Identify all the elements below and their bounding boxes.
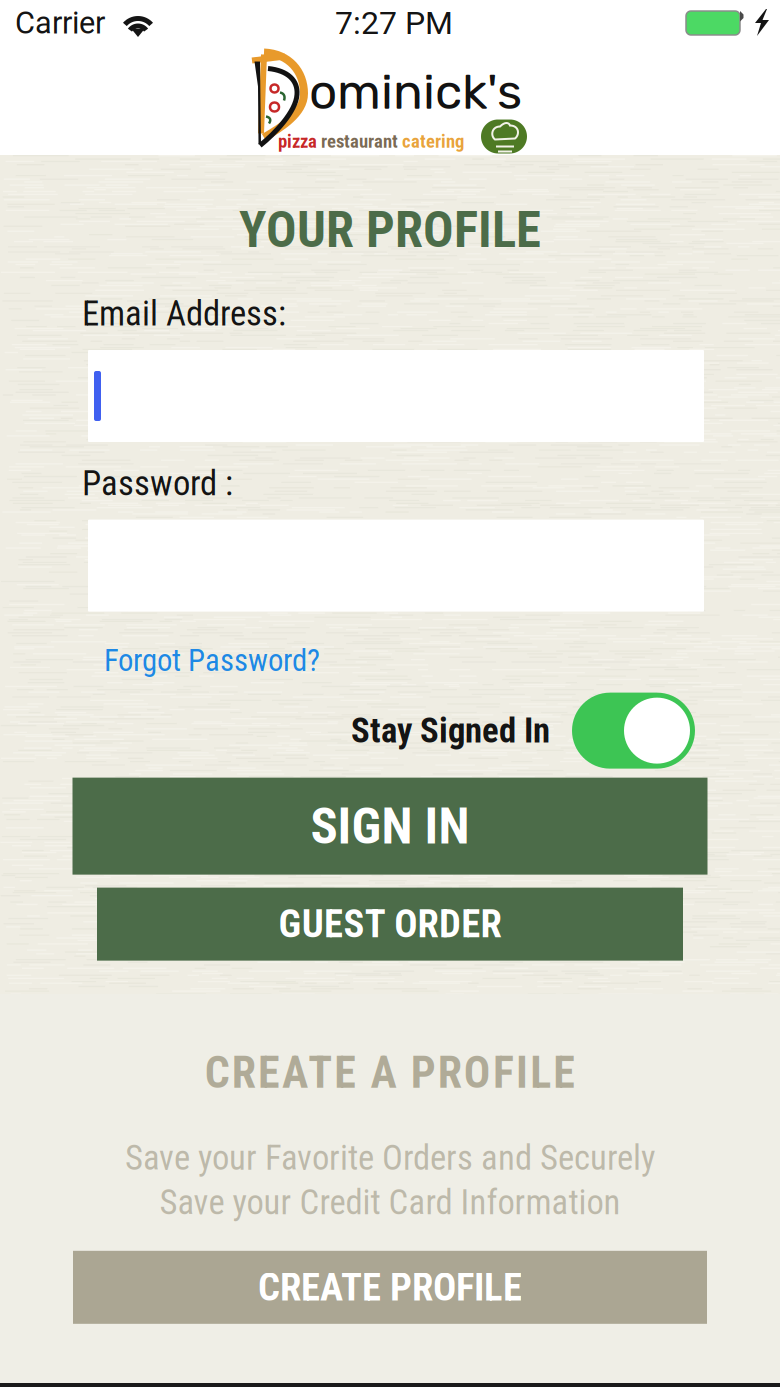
button[interactable]: GUEST ORDER	[97, 888, 683, 961]
button[interactable]: Stay Signed In	[572, 693, 695, 769]
staticText: SIGN IN	[310, 796, 469, 856]
staticText: 7:27 PM	[335, 4, 453, 42]
staticText: GUEST ORDER	[278, 901, 501, 947]
staticText: YOUR PROFILE	[239, 200, 541, 259]
staticText: Carrier	[15, 5, 105, 41]
staticText: Password :	[82, 463, 233, 504]
staticText: Stay Signed In	[351, 710, 550, 751]
staticText: Email Address:	[82, 293, 286, 334]
staticText: ominick's	[309, 62, 522, 121]
staticText: restaurant	[317, 130, 398, 152]
button[interactable]: Forgot Password?	[82, 646, 320, 676]
staticText: catering	[398, 130, 464, 152]
staticText: Save your Favorite Orders and Securely	[125, 1138, 655, 1178]
button[interactable]: CREATE PROFILE	[73, 1251, 707, 1324]
staticText: Forgot Password?	[104, 643, 320, 679]
button[interactable]: SIGN IN	[72, 778, 707, 875]
staticText: pizza	[278, 130, 317, 152]
staticText: CREATE PROFILE	[258, 1265, 522, 1310]
staticText: CREATE A PROFILE	[205, 1047, 575, 1099]
staticText: Save your Credit Card Information	[159, 1182, 620, 1223]
